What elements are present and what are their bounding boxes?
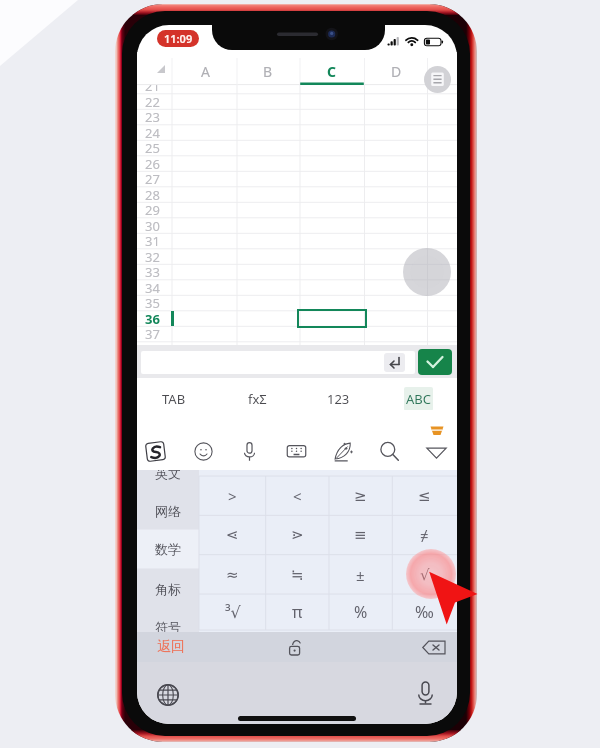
button[interactable]: Emoji — [183, 433, 223, 469]
staticText: ≡ — [354, 526, 367, 543]
staticText: TAB — [162, 390, 186, 408]
staticText: 34 — [145, 279, 160, 295]
button[interactable]: B — [244, 56, 292, 86]
button[interactable]: 角标 — [137, 571, 199, 607]
staticText: > — [228, 486, 237, 506]
button[interactable]: 网络 — [137, 493, 199, 529]
staticText: ‰ — [415, 601, 434, 623]
button[interactable]: Voice input — [407, 675, 443, 711]
button[interactable]: Voice input — [229, 433, 269, 469]
button[interactable]: 英文 — [137, 470, 199, 491]
button[interactable]: A — [181, 56, 229, 86]
button[interactable]: AssistiveTouch — [403, 248, 451, 296]
button[interactable]: ‰ — [392, 594, 457, 630]
staticText: ³√ — [225, 601, 241, 623]
button[interactable]: Confirm — [418, 349, 452, 375]
button[interactable]: Recording 11:09 — [157, 30, 199, 47]
button[interactable]: Sogou input — [137, 433, 175, 469]
staticText: C — [327, 62, 336, 81]
button[interactable]: D — [372, 56, 420, 86]
button[interactable]: Collapse keyboard — [416, 433, 456, 469]
staticText: < — [293, 486, 302, 506]
button[interactable]: TAB — [144, 384, 204, 414]
staticText: 29 — [145, 201, 160, 217]
button[interactable]: ≡ — [329, 515, 392, 554]
button[interactable]: C — [307, 56, 355, 86]
button[interactable]: ≒ — [266, 555, 329, 594]
button[interactable]: Keyboard — [276, 433, 316, 469]
button[interactable]: 数学 — [137, 531, 199, 567]
button[interactable]: ≈ — [199, 555, 266, 594]
staticText: √ — [420, 566, 430, 583]
button[interactable]: ABC — [398, 383, 439, 415]
staticText: 符号 — [155, 619, 181, 632]
button[interactable]: √ — [392, 555, 457, 594]
button[interactable]: 符号 — [137, 609, 199, 632]
button[interactable]: ≥ — [329, 476, 392, 515]
button[interactable]: % — [329, 594, 392, 630]
staticText: 11:09 — [164, 31, 193, 46]
staticText: 31 — [145, 232, 160, 248]
button[interactable]: ⋖ — [199, 515, 266, 554]
staticText: 25 — [145, 139, 160, 155]
button[interactable]: ⋗ — [266, 515, 329, 554]
staticText: % — [354, 601, 368, 623]
button[interactable]: Enter — [141, 351, 415, 374]
staticText: ⋖ — [226, 526, 239, 543]
staticText: 27 — [145, 170, 160, 186]
staticText: ≥ — [354, 487, 367, 504]
staticText: ± — [356, 565, 365, 585]
staticText: 数学 — [155, 541, 181, 557]
button[interactable]: ≠ — [392, 515, 457, 554]
button[interactable]: Search — [369, 433, 409, 469]
staticText: ≤ — [418, 487, 431, 504]
staticText: ≠ — [420, 525, 429, 545]
button[interactable]: fxΣ — [227, 384, 287, 414]
staticText: fxΣ — [248, 390, 267, 408]
staticText: 角标 — [155, 581, 181, 597]
staticText: D — [391, 62, 402, 81]
button[interactable]: Save — [424, 66, 451, 93]
staticText: 123 — [327, 390, 350, 408]
button[interactable]: Enter — [384, 353, 405, 372]
staticText: 网络 — [155, 503, 181, 519]
staticText: 28 — [145, 186, 160, 202]
staticText: 24 — [145, 124, 160, 140]
button[interactable]: Unlock shift — [281, 636, 307, 658]
button[interactable]: Handwriting — [323, 433, 363, 469]
staticText: 返回 — [157, 638, 185, 656]
staticText: π — [292, 601, 303, 623]
staticText: 26 — [145, 155, 160, 171]
staticText: 21 — [145, 77, 160, 93]
staticText: 英文 — [155, 470, 181, 481]
staticText: 22 — [145, 93, 160, 109]
button[interactable]: π — [266, 594, 329, 630]
button[interactable]: Delete — [419, 636, 449, 658]
staticText: 37 — [145, 325, 160, 341]
staticText: B — [263, 62, 273, 81]
staticText: ≒ — [291, 566, 304, 583]
button[interactable]: 123 — [308, 384, 368, 414]
staticText: A — [201, 62, 210, 81]
staticText: ≈ — [226, 566, 239, 583]
button[interactable]: ± — [329, 555, 392, 594]
button[interactable]: 返回 — [147, 632, 195, 662]
staticText: 23 — [145, 108, 160, 124]
staticText: 33 — [145, 263, 160, 279]
button[interactable]: Switch input language — [149, 676, 186, 713]
button[interactable]: ≤ — [392, 476, 457, 515]
staticText: 35 — [145, 294, 160, 310]
staticText: 32 — [145, 248, 160, 264]
staticText: 36 — [145, 310, 160, 326]
button[interactable]: < — [266, 476, 329, 515]
staticText: ABC — [406, 390, 431, 408]
staticText: ⋗ — [291, 526, 304, 543]
button[interactable]: ³√ — [199, 594, 266, 630]
button[interactable]: > — [199, 476, 266, 515]
staticText: 30 — [145, 217, 160, 233]
